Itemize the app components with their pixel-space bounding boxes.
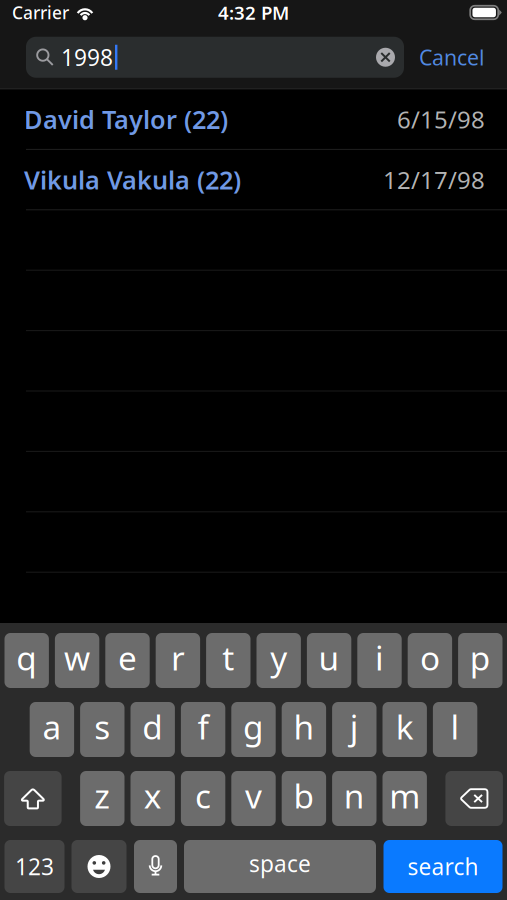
staticText: 12/17/98 [383, 164, 485, 196]
button[interactable]: y [256, 633, 301, 688]
staticText: Cancel [419, 43, 485, 71]
staticText: v [245, 773, 262, 818]
staticText: 123 [15, 851, 54, 881]
button[interactable]: w [55, 633, 99, 688]
button[interactable]: s [80, 702, 124, 757]
button[interactable]: e [105, 633, 150, 688]
staticText: i [375, 635, 384, 680]
staticText: 6/15/98 [397, 103, 485, 135]
staticText: Vikula Vakula (22) [24, 163, 241, 196]
button[interactable]: k [382, 702, 427, 757]
staticText: o [420, 635, 440, 680]
button[interactable]: b [282, 771, 326, 826]
button[interactable]: Emoji [71, 840, 126, 893]
button[interactable]: r [156, 633, 200, 688]
staticText: l [451, 704, 460, 749]
button[interactable]: g [231, 702, 276, 757]
button[interactable]: u [307, 633, 351, 688]
button[interactable]: n [332, 771, 376, 826]
button[interactable]: space [184, 840, 376, 893]
button[interactable]: Vikula Vakula (22) [0, 150, 507, 210]
button[interactable]: f [181, 702, 225, 757]
staticText: m [389, 773, 420, 818]
button[interactable]: Dictation [134, 840, 177, 893]
staticText: b [293, 773, 314, 818]
button[interactable]: v [231, 771, 276, 826]
button[interactable]: x [130, 771, 175, 826]
staticText: k [396, 704, 414, 749]
staticText: q [16, 635, 37, 680]
button[interactable]: j [332, 702, 376, 757]
staticText: s [94, 704, 110, 749]
button[interactable]: z [80, 771, 124, 826]
button[interactable]: m [382, 771, 427, 826]
button[interactable]: h [282, 702, 326, 757]
staticText: n [344, 773, 365, 818]
staticText: u [319, 635, 340, 680]
staticText: 4:32 PM [218, 0, 289, 25]
staticText: h [293, 704, 314, 749]
button[interactable]: i [357, 633, 402, 688]
staticText: p [470, 635, 491, 680]
button[interactable]: p [458, 633, 502, 688]
staticText: a [42, 704, 61, 749]
button[interactable]: Delete [445, 771, 503, 826]
staticText: David Taylor (22) [24, 102, 228, 136]
staticText: e [118, 635, 137, 680]
button[interactable]: q [4, 633, 49, 688]
button[interactable]: Clear search text [376, 48, 395, 67]
staticText: 1998 [61, 42, 113, 72]
button[interactable]: search [383, 840, 502, 893]
staticText: z [94, 773, 110, 818]
staticText: space [249, 848, 311, 878]
staticText: f [198, 704, 209, 749]
staticText: g [243, 704, 264, 749]
staticText: Carrier [12, 1, 69, 24]
button[interactable]: c [181, 771, 225, 826]
button[interactable]: Shift [4, 771, 62, 826]
button[interactable]: o [408, 633, 452, 688]
button[interactable]: t [206, 633, 250, 688]
staticText: x [144, 773, 162, 818]
staticText: t [222, 635, 234, 680]
button[interactable]: Numbers and symbols [4, 840, 64, 893]
button[interactable]: d [130, 702, 175, 757]
staticText: search [407, 851, 478, 881]
button[interactable]: l [433, 702, 477, 757]
button[interactable]: a [30, 702, 74, 757]
button[interactable]: David Taylor (22) [0, 89, 507, 150]
staticText: d [142, 704, 163, 749]
staticText: j [350, 704, 359, 749]
staticText: w [64, 635, 90, 680]
staticText: c [195, 773, 211, 818]
button[interactable]: Cancel [404, 37, 500, 78]
staticText: y [270, 635, 287, 680]
staticText: r [171, 635, 185, 680]
